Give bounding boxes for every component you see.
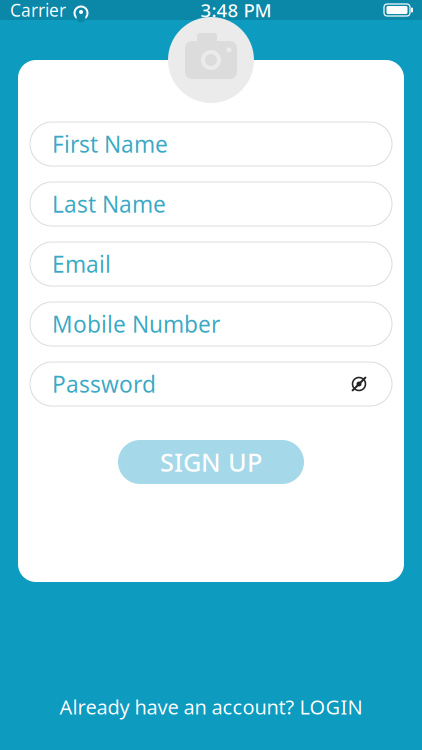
staticText: Carrier (10, 0, 66, 21)
staticText: Last Name (52, 189, 166, 219)
button[interactable]: Add profile photo (168, 17, 254, 103)
button[interactable]: SIGN UP (118, 440, 304, 484)
staticText: First Name (52, 129, 168, 159)
staticText: 3:48 PM (200, 0, 271, 22)
button[interactable]: Already have an account? LOGIN (59, 693, 362, 720)
staticText: Email (52, 249, 111, 279)
staticText: Already have an account? LOGIN (59, 693, 362, 720)
staticText: SIGN UP (160, 445, 262, 479)
staticText: Password (52, 369, 156, 399)
staticText: Mobile Number (52, 309, 220, 339)
